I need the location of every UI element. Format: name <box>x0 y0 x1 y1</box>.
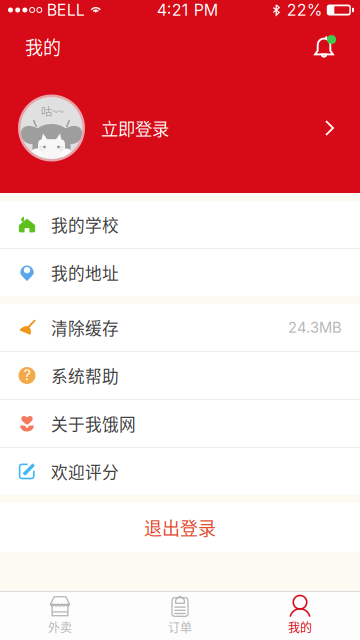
button[interactable]: ? <box>0 352 360 399</box>
staticText: 22% <box>287 0 323 20</box>
staticText: 立即登录 <box>101 115 169 141</box>
button[interactable]: 我的地址 <box>0 249 360 296</box>
button[interactable]: 清除缓存 <box>0 304 360 351</box>
staticText: 咕~~ <box>41 103 64 119</box>
button[interactable]: 欢迎评分 <box>0 448 360 495</box>
staticText: 我的学校 <box>51 212 119 236</box>
staticText: 4:21 PM <box>157 0 218 20</box>
staticText: 我的 <box>288 618 312 636</box>
button[interactable]: 退出登录 <box>0 503 360 552</box>
staticText: 外卖 <box>48 618 72 636</box>
staticText: 退出登录 <box>144 514 216 541</box>
staticText: 订单 <box>168 618 192 636</box>
staticText: 我的地址 <box>51 260 119 284</box>
staticText: BELL <box>47 0 85 20</box>
staticText: 24.3MB <box>288 319 342 336</box>
button[interactable]: 订单 <box>120 591 240 640</box>
staticText: ? <box>23 366 30 384</box>
staticText: 清除缓存 <box>51 315 119 339</box>
staticText: 关于我饿网 <box>51 411 136 435</box>
button[interactable]: 外卖 <box>0 591 120 640</box>
staticText: 我的 <box>25 33 61 60</box>
button[interactable]: 咕~~ <box>0 73 360 193</box>
staticText: 欢迎评分 <box>51 459 119 483</box>
button[interactable]: Notifications <box>304 26 344 66</box>
button[interactable]: 我的学校 <box>0 201 360 248</box>
button[interactable]: 关于我饿网 <box>0 400 360 447</box>
staticText: 系统帮助 <box>51 363 119 387</box>
button[interactable]: 我的 <box>240 591 360 640</box>
